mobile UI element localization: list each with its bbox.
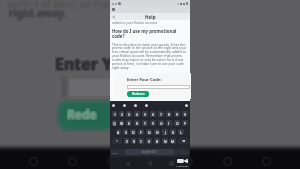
staticText: Enter Y bbox=[55, 54, 113, 76]
button[interactable]: D bbox=[130, 129, 136, 135]
button[interactable]: 3 bbox=[126, 111, 132, 117]
staticText: period of time, so make sure bbox=[7, 0, 142, 10]
staticText: period of time, so make sure bbox=[7, 0, 142, 10]
button[interactable]: 1 bbox=[112, 111, 117, 117]
button[interactable]: 8 bbox=[166, 111, 172, 117]
button[interactable]: Recents bbox=[168, 160, 175, 167]
button[interactable]: Symbols bbox=[111, 149, 119, 155]
button[interactable]: B bbox=[154, 138, 160, 144]
button[interactable]: U bbox=[158, 120, 164, 126]
button[interactable]: F bbox=[138, 129, 144, 135]
button[interactable]: X bbox=[131, 138, 136, 144]
button[interactable]: K bbox=[170, 129, 176, 135]
staticText: right away. bbox=[10, 5, 68, 19]
staticText: S bbox=[125, 130, 127, 135]
button[interactable]: Backspace bbox=[178, 138, 188, 144]
button[interactable]: Settings bbox=[185, 104, 188, 107]
staticText: Enter Y bbox=[54, 52, 112, 74]
staticText: right away. bbox=[10, 6, 68, 20]
button[interactable]: 0 bbox=[182, 111, 188, 117]
button[interactable]: Home bbox=[147, 160, 154, 167]
button[interactable]: V bbox=[146, 138, 152, 144]
staticText: 7 bbox=[160, 112, 162, 117]
button[interactable]: Y bbox=[150, 120, 156, 126]
button[interactable]: P bbox=[182, 120, 188, 126]
staticText: N bbox=[164, 139, 167, 144]
staticText: period of time, so make sure bbox=[8, 0, 143, 12]
button[interactable]: H bbox=[154, 129, 160, 135]
button[interactable]: 2 bbox=[119, 111, 124, 117]
button[interactable]: 9 bbox=[174, 111, 180, 117]
staticText: This is the place to claim your goods. E… bbox=[112, 42, 188, 70]
staticText: U bbox=[160, 121, 163, 126]
button[interactable]: Keyboard tool bbox=[123, 104, 126, 107]
staticText: Enter Y bbox=[56, 52, 114, 74]
staticText: period of time, so make sure bbox=[7, 0, 142, 11]
staticText: period of time, so make sure bbox=[8, 0, 143, 10]
staticText: period of time, so make sure bbox=[9, 0, 144, 11]
button[interactable]: N bbox=[162, 138, 168, 144]
staticText: Rede bbox=[67, 106, 97, 122]
button[interactable]: Back bbox=[125, 160, 132, 167]
staticText: Rede bbox=[67, 105, 97, 121]
button[interactable]: Keyboard tool bbox=[134, 104, 137, 107]
staticText: period of time, so make sure bbox=[9, 0, 144, 12]
button[interactable]: 5 bbox=[142, 111, 148, 117]
staticText: Q bbox=[113, 121, 116, 126]
staticText: Enter Y bbox=[56, 53, 114, 75]
staticText: Rede bbox=[66, 107, 96, 123]
staticText: period of time, so make sure bbox=[9, 0, 144, 10]
staticText: English (US) bbox=[142, 150, 157, 154]
staticText: right away. bbox=[10, 7, 68, 21]
button[interactable]: Keyboard tool bbox=[145, 104, 148, 107]
staticText: Rede bbox=[68, 106, 98, 122]
staticText: Rede bbox=[68, 107, 98, 123]
staticText: Rede bbox=[67, 107, 97, 123]
button[interactable]: Back bbox=[110, 13, 118, 20]
button[interactable] bbox=[127, 85, 190, 89]
button[interactable]: M bbox=[170, 138, 176, 144]
button[interactable]: R bbox=[134, 120, 140, 126]
staticText: 5 bbox=[144, 112, 146, 117]
staticText: How do I use my promotional code? bbox=[112, 28, 188, 40]
button[interactable]: G bbox=[146, 129, 152, 135]
button[interactable]: Q bbox=[112, 120, 117, 126]
button[interactable]: 7 bbox=[158, 111, 164, 117]
button[interactable]: O bbox=[174, 120, 180, 126]
button[interactable]: C bbox=[138, 138, 144, 144]
button[interactable]: English (US) bbox=[125, 149, 174, 155]
staticText: 0 bbox=[184, 112, 186, 117]
button[interactable]: T bbox=[142, 120, 148, 126]
staticText: Rede bbox=[68, 105, 98, 121]
staticText: period of time, so make sure bbox=[8, 0, 143, 11]
button[interactable]: A bbox=[116, 129, 121, 135]
button[interactable]: Redeem bbox=[127, 91, 149, 97]
button[interactable]: 4 bbox=[134, 111, 140, 117]
button[interactable]: J bbox=[162, 129, 168, 135]
button[interactable]: W bbox=[119, 120, 124, 126]
staticText: Enter Y bbox=[56, 54, 114, 76]
button[interactable]: E bbox=[126, 120, 132, 126]
button[interactable]: Keyboard tool bbox=[112, 104, 115, 107]
staticText: M bbox=[171, 139, 175, 144]
staticText: Enter Y bbox=[55, 52, 113, 74]
staticText: F bbox=[140, 130, 142, 135]
staticText: Help bbox=[145, 14, 156, 20]
button[interactable]: S bbox=[123, 129, 128, 135]
staticText: V bbox=[148, 139, 151, 144]
staticText: G bbox=[148, 130, 151, 135]
staticText: Enter Y bbox=[54, 54, 112, 76]
staticText: right away. bbox=[10, 7, 68, 21]
button[interactable]: Shift bbox=[112, 138, 122, 144]
staticText: Enter Y bbox=[56, 54, 114, 76]
button[interactable]: 6 bbox=[150, 111, 156, 117]
button[interactable]: Z bbox=[124, 138, 129, 144]
staticText: Enter Y bbox=[54, 54, 112, 76]
button[interactable]: L bbox=[178, 129, 184, 135]
staticText: 1 bbox=[114, 112, 116, 117]
button[interactable]: I bbox=[166, 120, 172, 126]
